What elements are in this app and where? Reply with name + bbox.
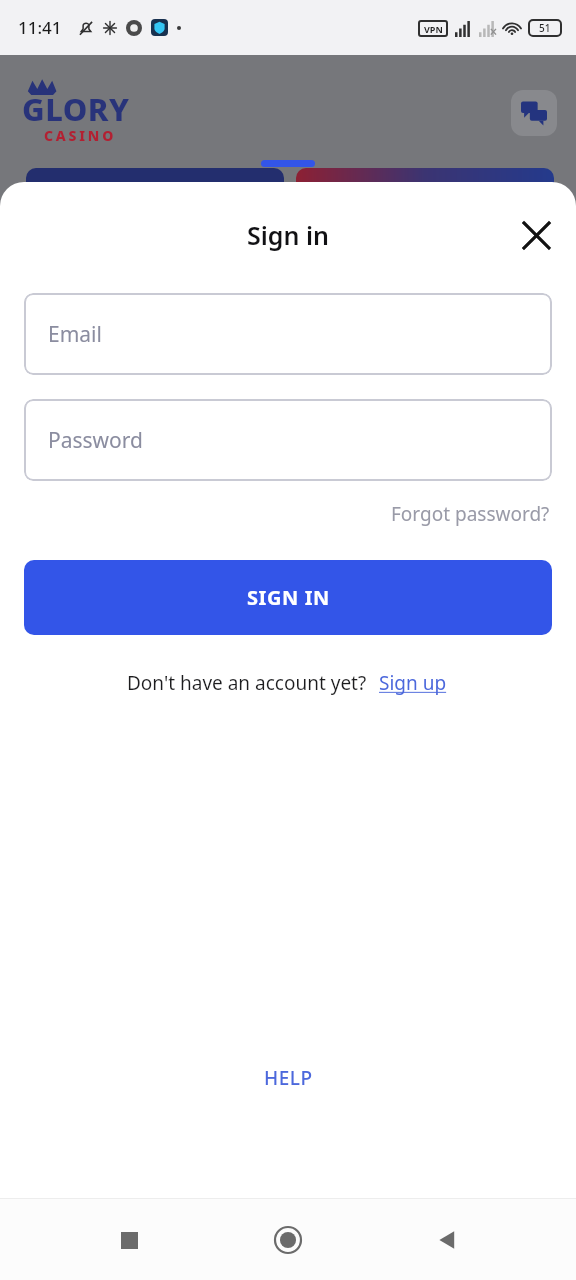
staticText: HELP [264, 1065, 313, 1091]
button[interactable]: Forgot password? [389, 497, 552, 531]
staticText: SIGN IN [247, 584, 330, 611]
staticText: GLORY [22, 88, 130, 130]
button[interactable]: Home [258, 1210, 318, 1270]
staticText: Don't have an account yet? [127, 670, 367, 696]
staticText: Password [48, 426, 143, 455]
button[interactable]: Sign up [377, 667, 449, 699]
staticText: VPN [424, 23, 443, 35]
button[interactable]: HELP [254, 1059, 323, 1097]
button[interactable]: Support chat [511, 90, 557, 136]
button[interactable]: Email [24, 293, 552, 375]
button[interactable]: SIGN IN [24, 560, 552, 635]
staticText: Sign in [247, 218, 329, 252]
staticText: Sign up [379, 670, 447, 696]
button[interactable]: Password [24, 399, 552, 481]
button[interactable]: Close [516, 215, 556, 255]
staticText: 11:41 [18, 16, 62, 39]
staticText: Forgot password? [391, 501, 550, 527]
button[interactable]: Back [417, 1210, 477, 1270]
staticText: Email [48, 320, 102, 349]
button[interactable]: Recents [99, 1210, 159, 1270]
staticText: 51 [539, 21, 551, 35]
staticText: CASINO [44, 126, 117, 145]
